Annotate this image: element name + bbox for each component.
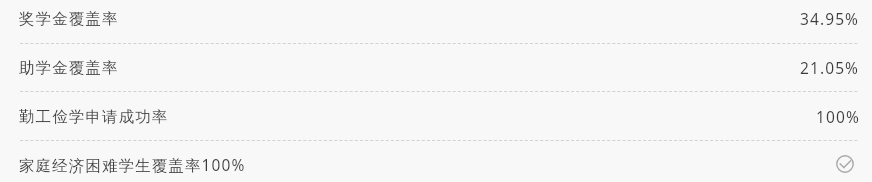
button[interactable]: 家庭经济困难学生覆盖率100% — [0, 140, 872, 182]
staticText: 助学金覆盖率 — [19, 58, 119, 78]
button[interactable]: 勤工俭学申请成功率 — [0, 92, 872, 141]
staticText: 勤工俭学申请成功率 — [19, 107, 169, 127]
staticText: 100% — [816, 106, 860, 127]
other: Completed — [836, 155, 854, 173]
button[interactable]: 助学金覆盖率 — [0, 43, 872, 92]
staticText: 34.95% — [800, 8, 860, 29]
staticText: 家庭经济困难学生覆盖率100% — [19, 154, 246, 175]
button[interactable]: 奖学金覆盖率 — [0, 0, 872, 43]
staticText: 奖学金覆盖率 — [19, 9, 119, 29]
staticText: 21.05% — [800, 57, 860, 78]
